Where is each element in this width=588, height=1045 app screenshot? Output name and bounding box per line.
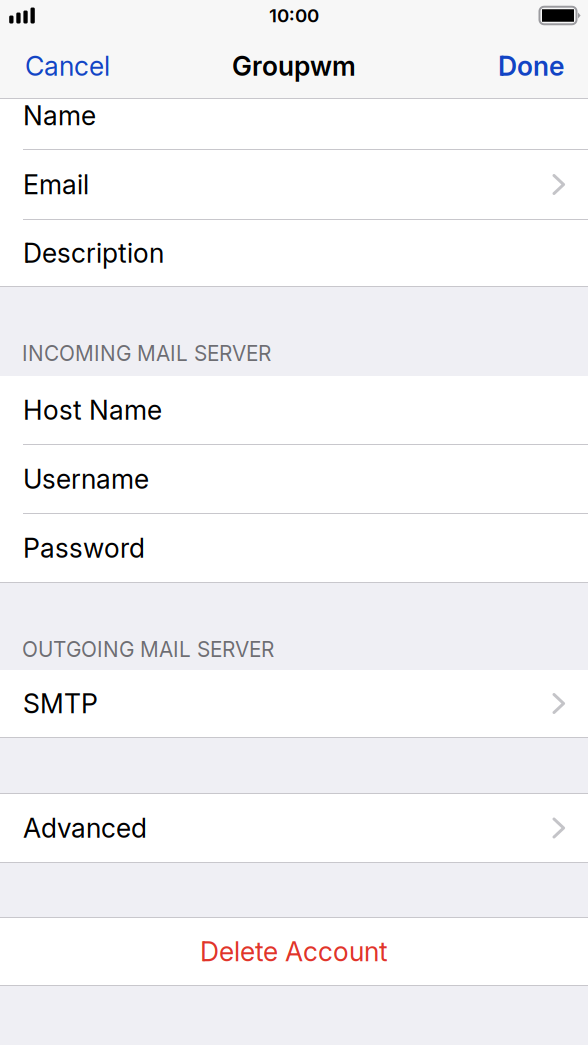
button[interactable]: Advanced: [0, 794, 588, 862]
button[interactable]: Username: [0, 445, 588, 513]
staticText: Name: [23, 99, 96, 132]
button[interactable]: Email: [0, 150, 588, 219]
staticText: Delete Account: [200, 935, 388, 968]
button[interactable]: Host Name: [0, 376, 588, 444]
staticText: Username: [23, 463, 149, 495]
button[interactable]: Cancel: [25, 36, 124, 96]
button[interactable]: Name: [0, 99, 588, 149]
staticText: Description: [23, 237, 164, 269]
button[interactable]: Description: [0, 220, 588, 286]
staticText: Password: [23, 532, 145, 564]
button[interactable]: Password: [0, 514, 588, 582]
staticText: 10:00: [269, 4, 319, 27]
staticText: Advanced: [23, 812, 147, 844]
staticText: Done: [498, 50, 564, 82]
staticText: INCOMING MAIL SERVER: [22, 341, 271, 366]
button[interactable]: SMTP: [0, 670, 588, 737]
staticText: Cancel: [25, 50, 110, 82]
staticText: Groupwm: [232, 50, 356, 82]
button[interactable]: Delete Account: [0, 918, 588, 985]
staticText: Host Name: [23, 394, 162, 426]
staticText: OUTGOING MAIL SERVER: [22, 637, 274, 662]
staticText: SMTP: [23, 687, 98, 720]
staticText: Email: [23, 168, 89, 201]
button[interactable]: Done: [484, 36, 564, 96]
